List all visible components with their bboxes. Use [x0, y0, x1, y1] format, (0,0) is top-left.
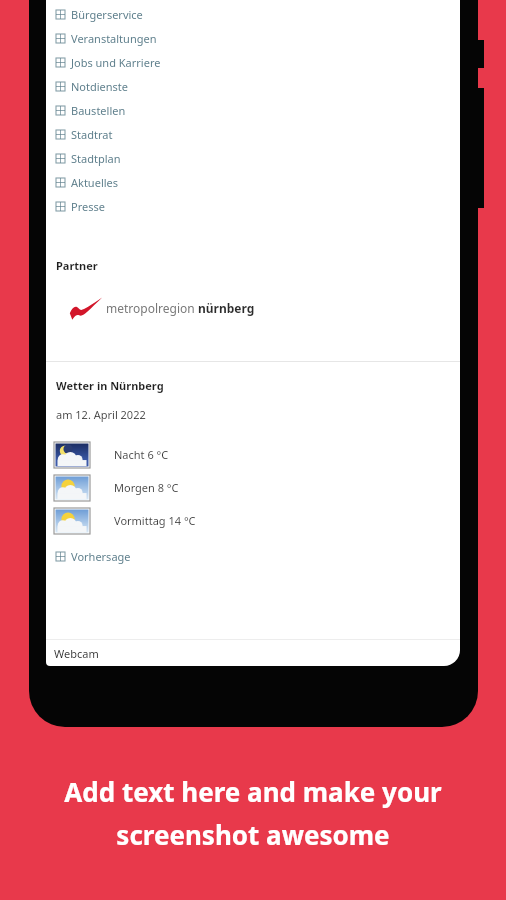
other: Nacht 6 °C	[54, 442, 90, 468]
staticText: Stadtrat	[71, 127, 113, 142]
button[interactable]: Jobs und Karriere	[56, 50, 460, 74]
other: Metropolregion Nürnberg Logo	[68, 295, 104, 321]
staticText: Vorhersage	[71, 549, 131, 564]
staticText: Veranstaltungen	[71, 31, 157, 46]
button[interactable]: Stadtplan	[56, 146, 460, 170]
staticText: Vormittag 14 °C	[114, 513, 196, 528]
button[interactable]: Metropolregion Nürnberg Logo	[68, 295, 255, 321]
button[interactable]: Notdienste	[56, 74, 460, 98]
button[interactable]: Vormittag 14 °C	[54, 504, 460, 537]
staticText: Partner	[56, 258, 98, 273]
staticText: screenshot awesome	[116, 817, 390, 852]
staticText: nürnberg	[198, 300, 255, 316]
staticText: am 12. April 2022	[56, 407, 146, 422]
button[interactable]: Morgen 8 °C	[54, 471, 460, 504]
button[interactable]: Aktuelles	[56, 170, 460, 194]
button[interactable]: Baustellen	[56, 98, 460, 122]
button[interactable]: Vorhersage	[56, 549, 131, 564]
staticText: Notdienste	[71, 79, 129, 94]
other: Vormittag 14 °C	[54, 508, 90, 534]
other: Morgen 8 °C	[54, 475, 90, 501]
staticText: Bürgerservice	[71, 7, 143, 22]
staticText: Presse	[71, 199, 105, 214]
staticText: Webcam	[54, 646, 99, 661]
staticText: Baustellen	[71, 103, 126, 118]
staticText: metropolregion	[106, 300, 198, 316]
button[interactable]: Presse	[56, 194, 460, 218]
button[interactable]: Nacht 6 °C	[54, 438, 460, 471]
staticText: Morgen 8 °C	[114, 480, 179, 495]
button[interactable]: Bürgerservice	[56, 2, 460, 26]
button[interactable]: Veranstaltungen	[56, 26, 460, 50]
button[interactable]: Stadtrat	[56, 122, 460, 146]
staticText: Wetter in Nürnberg	[56, 378, 164, 393]
staticText: Nacht 6 °C	[114, 447, 169, 462]
staticText: Add text here and make your	[64, 774, 442, 809]
staticText: Stadtplan	[71, 151, 121, 166]
staticText: Jobs und Karriere	[71, 55, 161, 70]
staticText: Aktuelles	[71, 175, 119, 190]
